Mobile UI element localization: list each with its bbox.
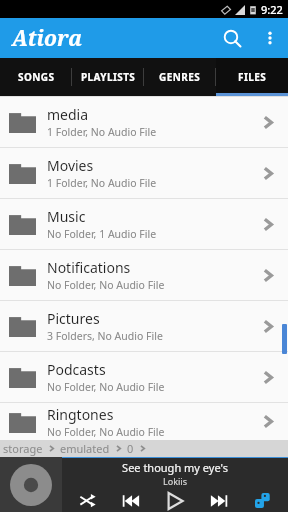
staticText: 9:22 — [261, 2, 283, 17]
staticText: storage — [3, 441, 43, 456]
staticText: Podcasts — [47, 360, 106, 379]
button[interactable]: Play — [156, 489, 194, 512]
staticText: GENRES — [159, 70, 201, 84]
button[interactable]: Podcasts — [0, 352, 288, 402]
button[interactable]: storage — [3, 441, 43, 456]
staticText: media — [47, 105, 89, 124]
button[interactable]: FILES — [216, 58, 288, 96]
staticText: Movies — [47, 156, 94, 175]
button[interactable]: Ringtones — [0, 403, 288, 440]
button[interactable]: Music — [0, 199, 288, 249]
button[interactable]: Shuffle — [68, 489, 106, 512]
button[interactable]: SONGS — [0, 58, 72, 96]
staticText: No Folder, No Audio File — [47, 278, 165, 292]
button[interactable]: Pictures — [0, 301, 288, 351]
staticText: Music — [47, 207, 86, 226]
staticText: FILES — [238, 70, 267, 84]
button[interactable]: More options — [252, 20, 288, 56]
staticText: Pictures — [47, 309, 100, 328]
button[interactable]: 0 — [127, 441, 134, 456]
button[interactable]: PLAYLISTS — [72, 58, 144, 96]
staticText: No Folder, No Audio File — [47, 425, 165, 439]
button[interactable]: Equalizer — [244, 489, 282, 512]
staticText: Notifications — [47, 258, 131, 277]
button[interactable]: emulated — [60, 441, 110, 456]
button[interactable]: Previous — [112, 489, 150, 512]
button[interactable]: GENRES — [144, 58, 216, 96]
button[interactable]: Now playing artwork — [0, 457, 62, 512]
staticText: Lokiis — [62, 475, 288, 487]
staticText: See though my eye's — [62, 460, 288, 475]
button[interactable]: Movies — [0, 148, 288, 198]
staticText: No Folder, 1 Audio File — [47, 227, 157, 241]
button[interactable]: Notifications — [0, 250, 288, 300]
staticText: 3 Folders, No Audio File — [47, 329, 163, 343]
staticText: emulated — [60, 441, 110, 456]
staticText: PLAYLISTS — [81, 70, 136, 84]
button[interactable]: Search — [212, 18, 252, 58]
staticText: 0 — [127, 441, 134, 456]
staticText: 1 Folder, No Audio File — [47, 125, 157, 139]
button[interactable]: Next — [200, 489, 238, 512]
staticText: 1 Folder, No Audio File — [47, 176, 157, 190]
staticText: No Folder, No Audio File — [47, 380, 165, 394]
staticText: Ringtones — [47, 405, 114, 424]
staticText: SONGS — [18, 70, 55, 84]
button[interactable]: media — [0, 97, 288, 147]
staticText: Atiora — [12, 24, 83, 53]
